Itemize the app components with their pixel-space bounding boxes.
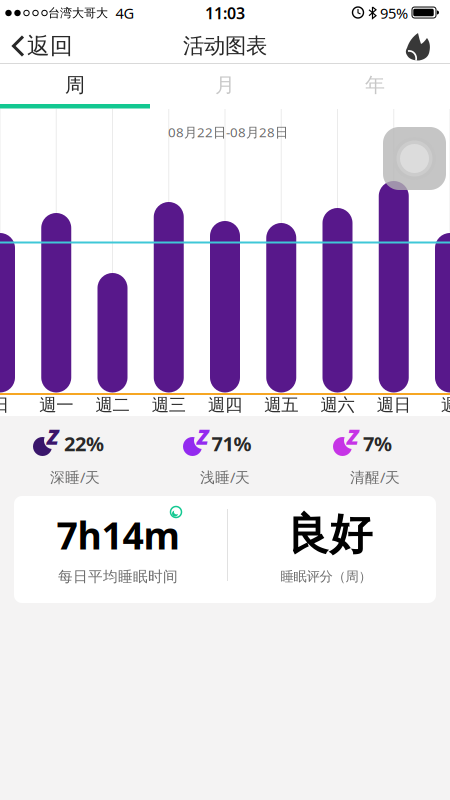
staticText: 台湾大哥大 <box>48 6 108 20</box>
button[interactable]: 周 <box>0 66 150 104</box>
staticText: 週五 <box>264 394 298 416</box>
staticText: 活动图表 <box>183 33 267 59</box>
staticText: 週二 <box>95 394 129 416</box>
staticText: Z <box>347 422 358 451</box>
staticText: 月 <box>215 73 235 97</box>
button[interactable] <box>383 127 446 190</box>
staticText: 年 <box>365 73 385 97</box>
staticText: 週一 <box>39 394 73 416</box>
staticText: 4G <box>115 3 134 23</box>
staticText: 71% <box>211 430 251 457</box>
staticText: 週一 <box>441 394 450 416</box>
staticText: 每日平均睡眠时间 <box>58 567 178 585</box>
staticText: 良好 <box>286 508 372 561</box>
button[interactable]: 月 <box>150 66 300 104</box>
staticText: 週六 <box>320 394 354 416</box>
staticText: Z <box>197 422 208 451</box>
staticText: 95% <box>380 3 408 23</box>
staticText: 週三 <box>152 394 186 416</box>
button[interactable]: 返回 <box>0 0 450 800</box>
staticText: 週四 <box>208 394 242 416</box>
staticText: 浅睡/天 <box>200 467 250 487</box>
button[interactable]: 年 <box>300 66 450 104</box>
staticText: 睡眠评分（周） <box>280 568 371 585</box>
staticText: 週日 <box>377 394 411 416</box>
staticText: 週日 <box>0 394 9 416</box>
staticText: 周 <box>65 73 85 97</box>
button[interactable] <box>0 0 450 800</box>
staticText: 11:03 <box>205 2 245 24</box>
staticText: 返回 <box>27 32 73 60</box>
staticText: Z <box>47 422 58 451</box>
staticText: 08月22日-08月28日 <box>168 123 288 141</box>
staticText: 7h14m <box>56 510 179 560</box>
staticText: 22% <box>64 430 104 457</box>
staticText: 7% <box>363 430 392 457</box>
staticText: 清醒/天 <box>350 467 400 487</box>
staticText: 深睡/天 <box>50 467 100 487</box>
